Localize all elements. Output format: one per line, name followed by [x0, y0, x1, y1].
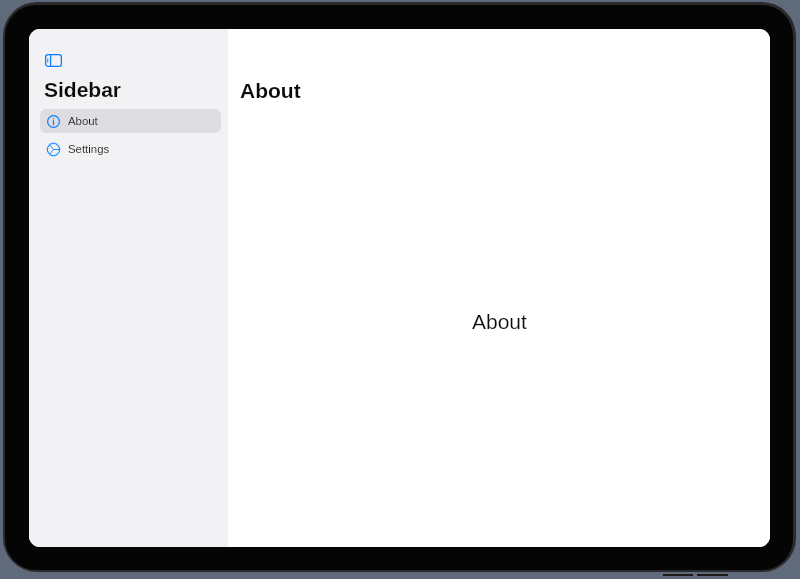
staticText: About — [68, 115, 98, 128]
button[interactable]: Toggle Sidebar — [42, 53, 64, 67]
staticText: Settings — [68, 143, 110, 156]
staticText: Sidebar — [44, 78, 122, 101]
button[interactable]: About — [40, 109, 221, 133]
staticText: About — [240, 79, 301, 102]
staticText: About — [472, 310, 527, 333]
button[interactable]: Settings — [40, 137, 221, 161]
